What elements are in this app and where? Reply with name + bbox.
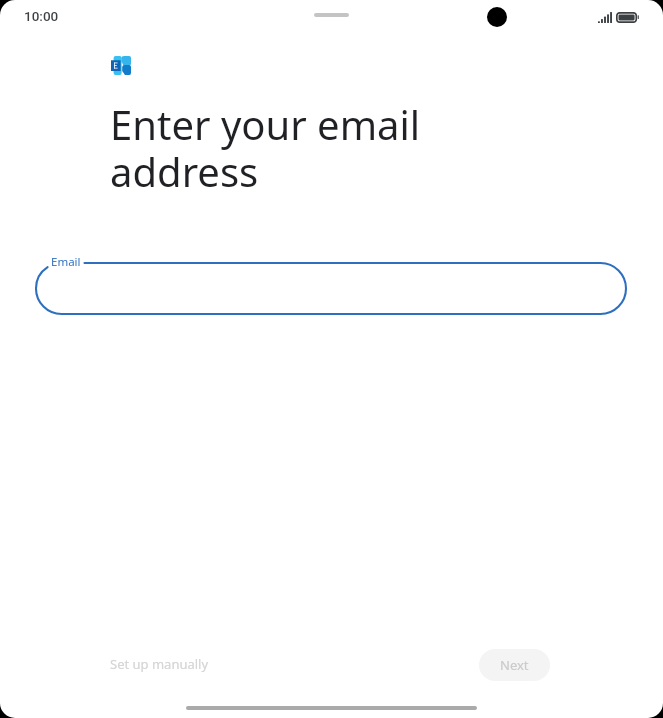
staticText: Set up manually [110, 655, 209, 673]
button[interactable]: Next [479, 649, 550, 681]
staticText: Next [500, 656, 529, 674]
button[interactable]: Set up manually [102, 648, 217, 680]
staticText: Email [51, 254, 81, 270]
staticText: Enter your email address [110, 97, 421, 199]
staticText: 10:00 [24, 8, 59, 24]
button[interactable]: Email address input field [36, 257, 626, 314]
